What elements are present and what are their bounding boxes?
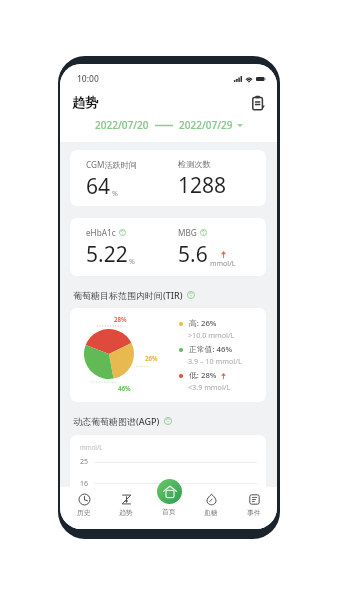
- staticText: 10:00: [77, 73, 99, 85]
- staticText: 5.22: [86, 240, 128, 269]
- staticText: eHbA1c: [86, 227, 116, 238]
- button[interactable]: 首页: [150, 487, 188, 529]
- staticText: 正常值: 46%: [189, 344, 233, 355]
- staticText: 64: [86, 172, 111, 201]
- staticText: 1288: [178, 171, 227, 200]
- staticText: <3.9 mmol/L: [188, 382, 231, 392]
- staticText: 低: 28%: [189, 370, 217, 381]
- staticText: MBG: [178, 227, 197, 238]
- button[interactable]: 28%: [70, 308, 266, 402]
- staticText: 葡萄糖目标范围内时间(TIR): [73, 289, 183, 301]
- staticText: 16: [80, 479, 89, 487]
- staticText: 28%: [114, 315, 127, 323]
- staticText: 首页: [162, 507, 176, 516]
- staticText: 事件: [247, 508, 261, 517]
- staticText: mmol/L: [210, 259, 236, 269]
- staticText: 历史: [77, 508, 91, 517]
- staticText: 5.6: [178, 240, 208, 269]
- button[interactable]: 2022/07/20: [60, 114, 277, 136]
- staticText: 2022/07/29: [179, 118, 233, 132]
- button[interactable]: eHbA1c: [70, 218, 266, 276]
- button[interactable]: 历史: [65, 487, 103, 529]
- button[interactable]: mmol/L: [70, 435, 266, 487]
- staticText: >10.0 mmol/L: [188, 330, 235, 340]
- button[interactable]: 事件: [235, 487, 273, 529]
- button[interactable]: CGM活跃时间: [70, 150, 266, 206]
- staticText: 血糖: [204, 508, 218, 517]
- staticText: 动态葡萄糖图谱(AGP): [73, 415, 160, 427]
- staticText: 高: 26%: [189, 318, 217, 329]
- staticText: 检测次数: [178, 159, 211, 169]
- staticText: 趋势: [119, 508, 133, 517]
- staticText: mmol/L: [80, 443, 103, 451]
- staticText: 25: [80, 457, 89, 467]
- staticText: %: [112, 189, 118, 199]
- staticText: 46%: [118, 384, 131, 392]
- button[interactable]: 趋势: [107, 487, 145, 529]
- staticText: CGM活跃时间: [86, 159, 138, 170]
- staticText: 趋势: [72, 94, 98, 110]
- staticText: 3.9 – 10 mmol/L: [188, 356, 242, 366]
- staticText: %: [129, 257, 135, 267]
- staticText: 26%: [145, 354, 158, 362]
- staticText: 2022/07/20: [95, 118, 149, 132]
- button[interactable]: 血糖: [192, 487, 230, 529]
- button[interactable]: 报告: [249, 93, 268, 112]
